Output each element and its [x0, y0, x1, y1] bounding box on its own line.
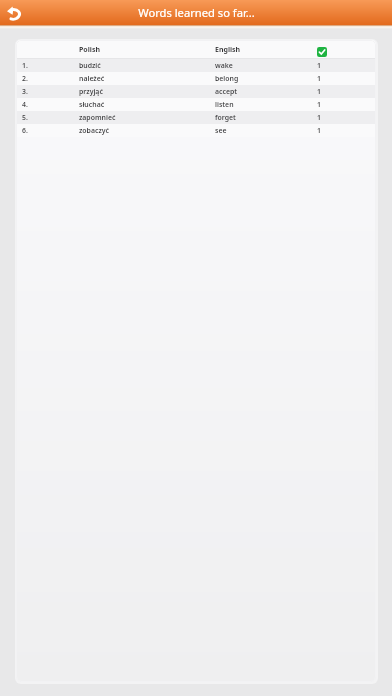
staticText: see: [215, 126, 227, 135]
staticText: 4.: [22, 100, 28, 109]
staticText: zobaczyć: [79, 126, 109, 135]
button[interactable]: 6.: [16, 124, 376, 137]
staticText: wake: [215, 61, 233, 70]
staticText: belong: [215, 74, 239, 83]
staticText: 1: [317, 100, 321, 109]
button[interactable]: Back: [0, 0, 32, 25]
staticText: 1: [317, 87, 321, 96]
button[interactable]: 2.: [16, 72, 376, 85]
button[interactable]: 3.: [16, 85, 376, 98]
staticText: 1.: [22, 61, 28, 70]
button[interactable]: Learned: [317, 47, 327, 57]
staticText: listen: [215, 100, 234, 109]
staticText: 1: [317, 126, 321, 135]
staticText: Polish: [79, 45, 100, 55]
staticText: forget: [215, 113, 236, 122]
staticText: 6.: [22, 126, 28, 135]
staticText: 1: [317, 61, 321, 70]
staticText: Words learned so far...: [138, 5, 255, 20]
staticText: English: [215, 45, 241, 55]
staticText: zapomnieć: [79, 113, 116, 122]
button[interactable]: 4.: [16, 98, 376, 111]
staticText: należeć: [79, 74, 105, 83]
staticText: budzić: [79, 61, 101, 70]
staticText: accept: [215, 87, 238, 96]
staticText: 3.: [22, 87, 28, 96]
staticText: 1: [317, 74, 321, 83]
staticText: słuchać: [79, 100, 105, 109]
button[interactable]: 1.: [16, 59, 376, 72]
staticText: 2.: [22, 74, 28, 83]
staticText: 5.: [22, 113, 28, 122]
button[interactable]: 5.: [16, 111, 376, 124]
staticText: przyjąć: [79, 87, 103, 96]
staticText: 1: [317, 113, 321, 122]
